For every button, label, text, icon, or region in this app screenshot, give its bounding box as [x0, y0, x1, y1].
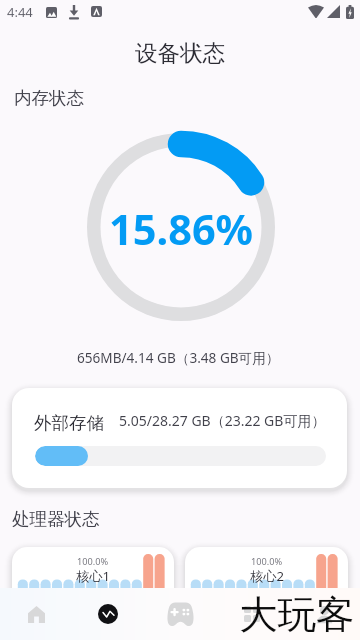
staticText: 核心1 [76, 567, 110, 585]
staticText: 100.0% [77, 555, 109, 568]
button[interactable]: Home [0, 588, 72, 640]
button[interactable]: 100.0% [12, 547, 174, 609]
staticText: 核心2 [250, 567, 284, 585]
staticText: 设备状态 [135, 39, 225, 67]
staticText: 4:44 [7, 3, 33, 21]
button[interactable]: Profile [288, 588, 360, 640]
button[interactable]: 100.0% [185, 547, 348, 609]
staticText: 100.0% [251, 555, 283, 568]
button[interactable]: Monitor [72, 588, 144, 640]
button[interactable]: 外部存储 [12, 388, 347, 488]
staticText: 大玩客 [239, 591, 355, 640]
staticText: 外部存储 [34, 412, 104, 434]
staticText: 内存状态 [14, 87, 84, 109]
staticText: 处理器状态 [12, 508, 100, 530]
staticText: 15.86% [109, 201, 254, 258]
staticText: 5.05/28.27 GB（23.22 GB可用） [119, 411, 326, 430]
button[interactable]: Games [144, 588, 216, 640]
staticText: 656MB/4.14 GB（3.48 GB可用） [77, 348, 280, 367]
button[interactable]: Apps [216, 588, 288, 640]
